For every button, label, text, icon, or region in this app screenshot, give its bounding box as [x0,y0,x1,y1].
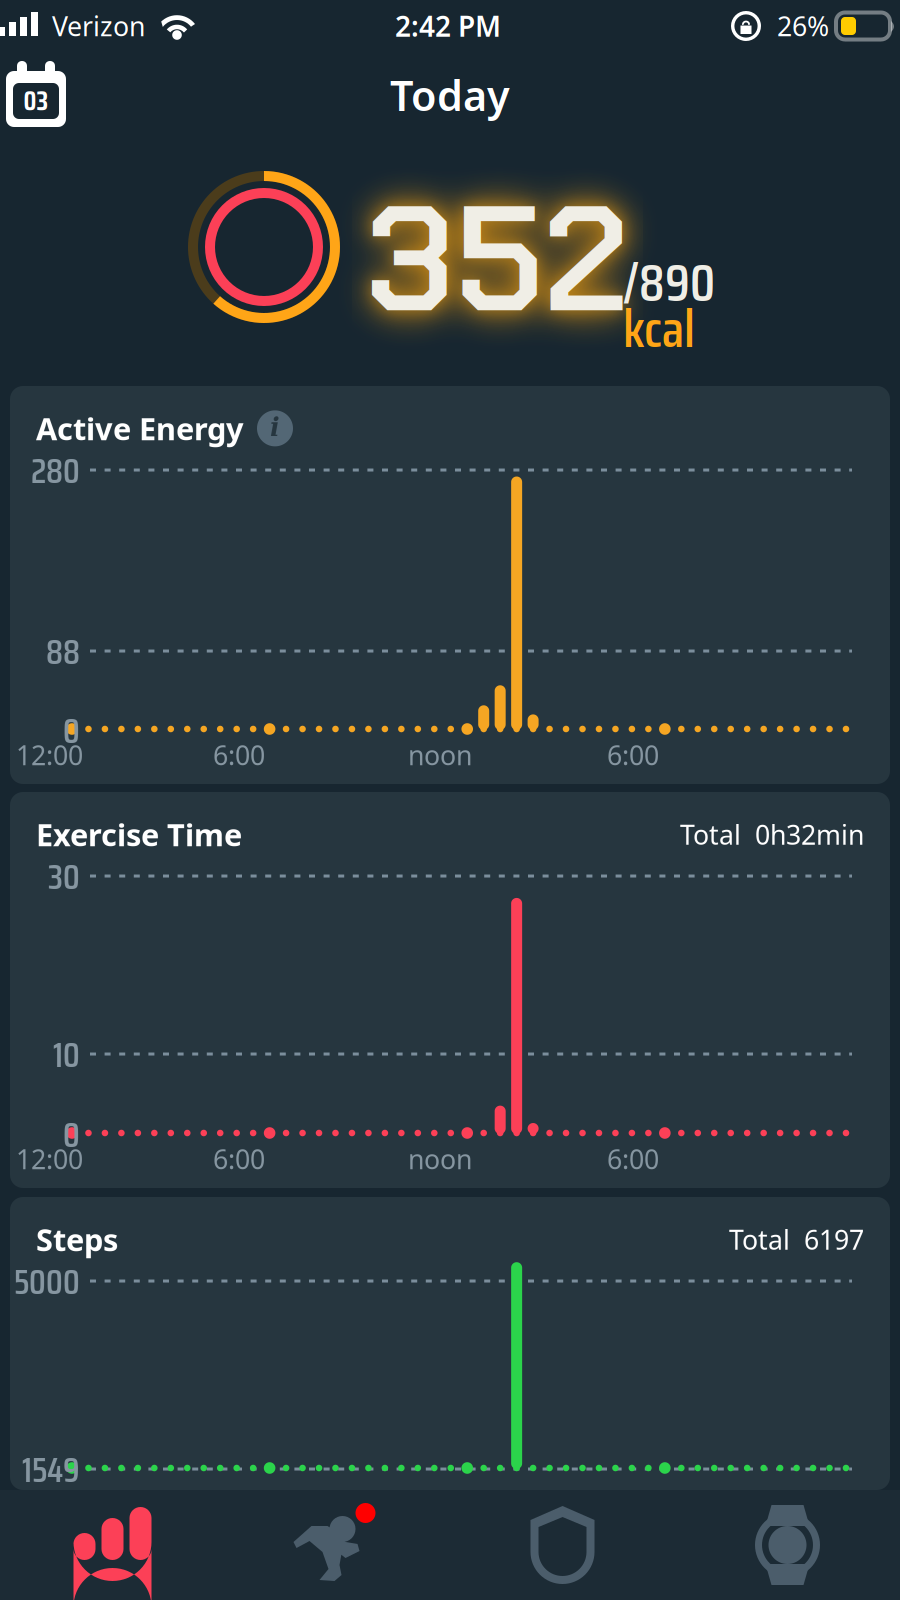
staticText: 352 [366,162,629,356]
staticText: 03 [23,80,48,122]
staticText: noon [408,1141,472,1177]
staticText: i [270,412,280,442]
staticText: 30 [48,850,80,904]
staticText: 0 [63,704,80,758]
staticText: 280 [31,444,80,498]
staticText: 12:00 [16,737,83,773]
staticText: kcal [623,288,695,370]
staticText: 6:00 [607,1141,659,1177]
staticText: 12:00 [16,1141,83,1177]
staticText: 0 [63,1108,80,1162]
button[interactable]: Apple Watch [675,1495,900,1595]
staticText: Verizon [38,8,159,44]
staticText: 10 [53,1028,80,1082]
staticText: /890 [623,242,715,324]
button[interactable]: Health [450,1494,675,1596]
button[interactable]: Charts [0,1494,225,1596]
staticText: 26% [763,8,836,44]
staticText: 6:00 [213,1141,265,1177]
staticText: 6:00 [213,737,265,773]
staticText: noon [408,737,472,773]
staticText: 5000 [14,1255,80,1309]
staticText: Total 0h32min [680,817,864,852]
staticText: Steps [36,1219,118,1260]
staticText: Total 6197 [729,1222,864,1257]
button[interactable]: Calendar [0,56,74,134]
staticText: 88 [46,625,80,679]
staticText: Today [390,68,510,122]
staticText: 6:00 [607,737,659,773]
staticText: 2:42 PM [395,7,501,45]
staticText: Active Energy [36,408,244,449]
button[interactable]: Today [378,66,522,124]
staticText: Exercise Time [36,814,242,855]
staticText: 1549 [22,1443,80,1497]
button[interactable]: Workouts [225,1495,450,1595]
